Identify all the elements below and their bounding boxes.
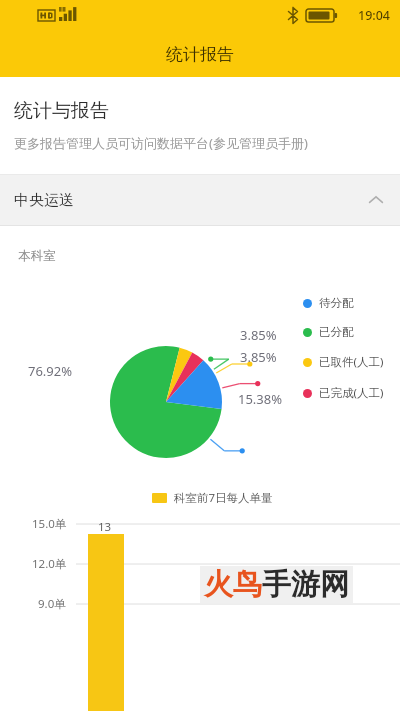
staticText: 科室前7日每人单量 xyxy=(174,490,273,506)
staticText: 待分配 xyxy=(319,296,354,310)
staticText: 3.85% xyxy=(240,348,277,366)
staticText: 统计报告 xyxy=(166,44,234,65)
staticText: 12.0单 xyxy=(32,556,67,572)
staticText: 13 xyxy=(98,519,112,535)
staticText: 19:04 xyxy=(358,7,391,24)
staticText: 统计与报告 xyxy=(14,99,109,123)
button[interactable]: 中央运送 xyxy=(0,175,400,225)
staticText: 更多报告管理人员可访问数据平台(参见管理员手册) xyxy=(14,134,308,152)
staticText: 已取件(人工) xyxy=(319,354,384,370)
button[interactable]: 待分配 xyxy=(303,296,354,310)
staticText: 15.0单 xyxy=(32,516,67,532)
staticText: 已分配 xyxy=(319,325,354,339)
staticText: 15.38% xyxy=(238,390,283,408)
staticText: 3.85% xyxy=(240,326,277,344)
staticText: 9.0单 xyxy=(38,596,66,612)
other: Collapse xyxy=(366,190,386,210)
button[interactable]: 已完成(人工) xyxy=(303,385,384,401)
staticText: 火鸟 xyxy=(204,566,262,603)
staticText: 中央运送 xyxy=(14,191,74,210)
staticText: 已完成(人工) xyxy=(319,385,384,401)
staticText: 76.92% xyxy=(28,362,73,380)
staticText: 手游网 xyxy=(262,566,349,603)
staticText: 本科室 xyxy=(18,248,56,264)
button[interactable]: 已取件(人工) xyxy=(303,354,384,370)
button[interactable]: 已分配 xyxy=(303,325,354,339)
